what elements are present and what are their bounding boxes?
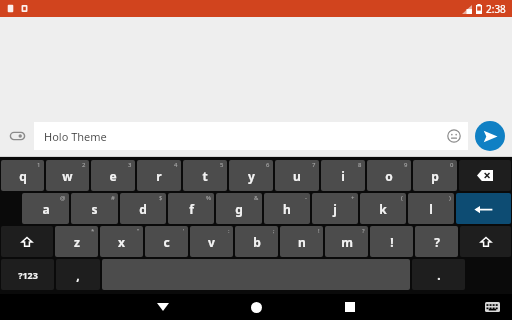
staticText: p <box>431 168 439 184</box>
staticText: f <box>189 201 194 217</box>
staticText: @ <box>60 194 66 202</box>
staticText: g <box>235 201 243 217</box>
button[interactable]: c <box>145 226 188 257</box>
staticText: ( <box>401 194 403 202</box>
staticText: k <box>379 201 387 217</box>
button[interactable]: t <box>183 160 227 191</box>
staticText: s <box>91 201 98 217</box>
button[interactable]: p <box>413 160 457 191</box>
staticText: 0 <box>450 161 454 169</box>
staticText: n <box>298 234 306 250</box>
button[interactable]: q <box>1 160 44 191</box>
staticText: u <box>293 168 301 184</box>
button[interactable]: u <box>275 160 319 191</box>
button[interactable]: j <box>312 193 358 224</box>
button[interactable]: Switch keyboard <box>482 298 502 316</box>
button[interactable]: Back <box>116 294 210 320</box>
button[interactable]: b <box>235 226 278 257</box>
staticText: i <box>341 168 345 184</box>
button[interactable]: x <box>100 226 143 257</box>
staticText: , <box>76 267 80 283</box>
button[interactable]: h <box>264 193 310 224</box>
button[interactable]: a <box>22 193 69 224</box>
button[interactable]: n <box>280 226 323 257</box>
staticText: # <box>111 194 115 202</box>
staticText: ; <box>273 227 275 235</box>
staticText: % <box>206 194 211 202</box>
staticText: q <box>19 168 27 184</box>
staticText: $ <box>159 194 163 202</box>
button[interactable]: Send <box>475 121 505 151</box>
staticText: 7 <box>312 161 316 169</box>
staticText: y <box>248 168 255 184</box>
button[interactable]: ? <box>415 226 458 257</box>
button[interactable]: d <box>120 193 166 224</box>
staticText: + <box>351 194 355 202</box>
staticText: : <box>228 227 230 235</box>
staticText: 8 <box>358 161 362 169</box>
button[interactable]: k <box>360 193 406 224</box>
staticText: - <box>305 194 307 202</box>
button[interactable]: Attach <box>0 114 34 157</box>
staticText: Holo Theme <box>44 129 107 144</box>
button[interactable]: , <box>56 259 100 290</box>
button[interactable]: ?123 <box>1 259 54 290</box>
staticText: d <box>139 201 147 217</box>
staticText: a <box>42 201 50 217</box>
button[interactable]: e <box>91 160 135 191</box>
staticText: " <box>137 227 140 235</box>
staticText: v <box>208 234 215 250</box>
button[interactable]: shift <box>460 226 511 257</box>
staticText: * <box>91 227 95 235</box>
staticText: 9 <box>404 161 408 169</box>
staticText: ! <box>390 234 394 250</box>
button[interactable]: shift <box>1 226 53 257</box>
staticText: j <box>333 201 337 217</box>
button[interactable]: Home <box>210 294 303 320</box>
button[interactable]: Emoji <box>445 127 463 145</box>
staticText: ! <box>318 227 320 235</box>
staticText: 5 <box>220 161 224 169</box>
staticText: . <box>437 267 441 283</box>
button[interactable]: z <box>55 226 98 257</box>
staticText: ' <box>183 227 185 235</box>
staticText: 2 <box>82 161 86 169</box>
staticText: c <box>163 234 170 250</box>
staticText: t <box>202 168 208 184</box>
staticText: w <box>62 168 73 184</box>
button[interactable]: Holo Theme <box>34 122 468 150</box>
button[interactable]: del <box>459 160 511 191</box>
button[interactable]: r <box>137 160 181 191</box>
button[interactable]: m <box>325 226 368 257</box>
staticText: e <box>109 168 117 184</box>
staticText: ? <box>362 227 365 235</box>
button[interactable]: Recents <box>303 294 396 320</box>
staticText: & <box>254 194 259 202</box>
button[interactable]: l <box>408 193 454 224</box>
button[interactable]: g <box>216 193 262 224</box>
staticText: ) <box>449 194 451 202</box>
staticText: ? <box>434 234 440 250</box>
staticText: b <box>253 234 261 250</box>
button[interactable]: v <box>190 226 233 257</box>
staticText: z <box>74 234 80 250</box>
staticText: ?123 <box>18 269 38 281</box>
button[interactable]: w <box>46 160 89 191</box>
staticText: 3 <box>128 161 132 169</box>
button[interactable]: . <box>412 259 465 290</box>
staticText: 6 <box>266 161 270 169</box>
staticText: 4 <box>174 161 178 169</box>
button[interactable]: s <box>71 193 118 224</box>
staticText: 2:38 <box>486 2 506 16</box>
staticText: x <box>118 234 125 250</box>
button[interactable]: y <box>229 160 273 191</box>
button[interactable]: f <box>168 193 214 224</box>
button[interactable]: i <box>321 160 365 191</box>
staticText: o <box>385 168 393 184</box>
button[interactable]: ! <box>370 226 413 257</box>
button[interactable]: enter <box>456 193 511 224</box>
button[interactable]: o <box>367 160 411 191</box>
staticText: 1 <box>37 161 41 169</box>
staticText: m <box>341 234 353 250</box>
